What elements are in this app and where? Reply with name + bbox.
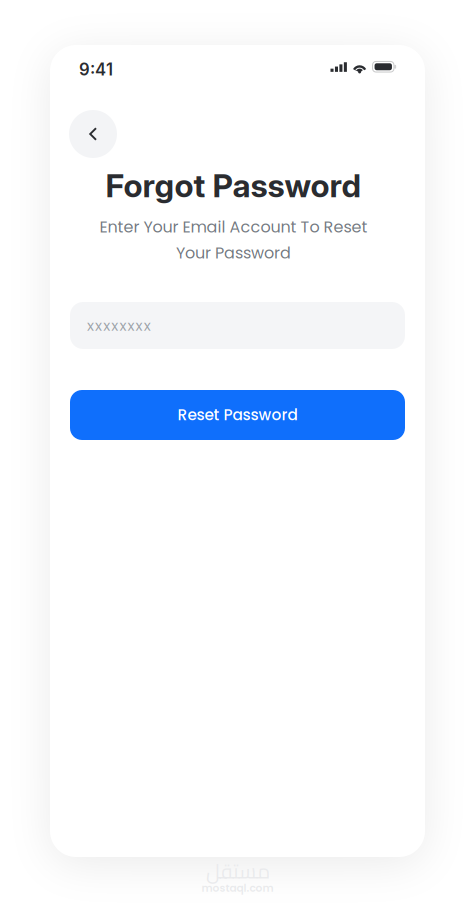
button[interactable]: Email address xyxy=(70,302,405,349)
staticText: xxxxxxxx xyxy=(87,315,151,336)
button[interactable]: Back xyxy=(69,110,117,158)
staticText: mostaql.com xyxy=(201,880,273,895)
staticText: مستقل xyxy=(205,852,269,890)
staticText: Forgot Password xyxy=(105,166,361,205)
staticText: Enter Your Email Account To Reset xyxy=(99,216,367,238)
staticText: Reset Password xyxy=(177,404,297,426)
button[interactable]: Reset Password xyxy=(70,390,405,440)
staticText: Your Password xyxy=(176,242,291,264)
staticText: 9:41 xyxy=(79,59,113,80)
